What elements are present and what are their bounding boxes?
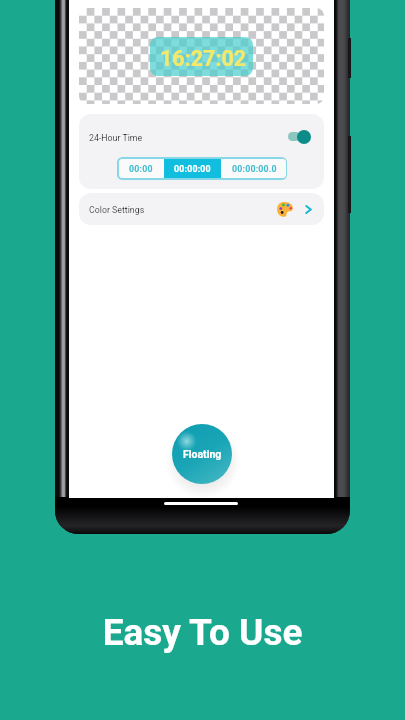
other: Open color settings	[305, 205, 312, 214]
button[interactable]: Floating	[172, 424, 232, 484]
staticText: 00:00:00.0	[232, 164, 277, 174]
button[interactable]: Toggle 24-hour time	[288, 129, 311, 144]
staticText: Easy To Use	[0, 611, 405, 654]
staticText: 16:27:02	[160, 46, 247, 71]
staticText: 00:00:00	[174, 164, 211, 174]
staticText: Color Settings	[89, 205, 145, 215]
staticText: Floating	[183, 448, 222, 460]
button[interactable]: 00:00:00	[164, 159, 221, 178]
button[interactable]: 00:00:00.0	[222, 159, 286, 178]
button[interactable]: Color Settings	[79, 193, 324, 225]
button[interactable]: 24-Hour Time	[79, 114, 324, 158]
button[interactable]: 00:00	[119, 159, 163, 178]
button[interactable]: 16:27:02	[150, 37, 253, 76]
staticText: 24-Hour Time	[89, 133, 143, 143]
staticText: 00:00	[129, 164, 153, 174]
